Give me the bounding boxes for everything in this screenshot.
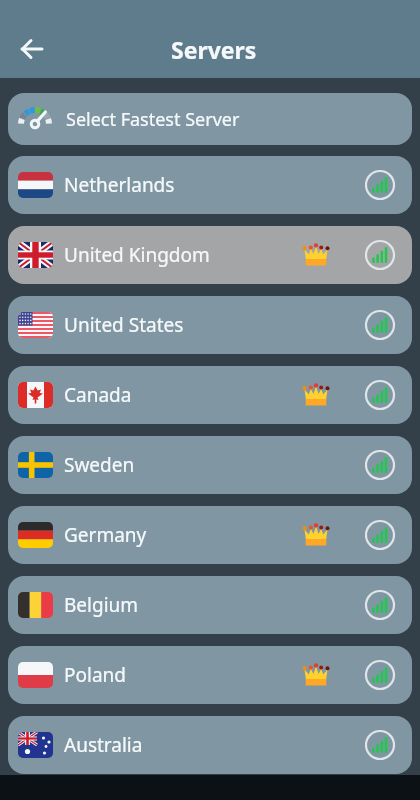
staticText: Sweden	[64, 452, 135, 478]
button[interactable]: Germany	[8, 506, 412, 564]
button[interactable]: Belgium	[8, 576, 412, 634]
button[interactable]: United Kingdom	[8, 226, 412, 284]
button[interactable]	[12, 29, 52, 69]
staticText: Belgium	[64, 592, 139, 618]
staticText: United Kingdom	[64, 242, 210, 268]
staticText: United States	[64, 312, 184, 338]
button[interactable]: Select Fastest Server	[8, 93, 412, 145]
button[interactable]: Canada	[8, 366, 412, 424]
button[interactable]: Sweden	[8, 436, 412, 494]
staticText: Australia	[64, 732, 143, 758]
staticText: Servers	[171, 34, 257, 65]
staticText: Netherlands	[64, 172, 175, 198]
staticText: Germany	[64, 522, 147, 548]
button[interactable]: Netherlands	[8, 156, 412, 214]
button[interactable]: Australia	[8, 716, 412, 774]
staticText: Select Fastest Server	[66, 107, 240, 132]
staticText: Canada	[64, 382, 132, 408]
staticText: Poland	[64, 662, 126, 688]
button[interactable]: Poland	[8, 646, 412, 704]
button[interactable]: United States	[8, 296, 412, 354]
